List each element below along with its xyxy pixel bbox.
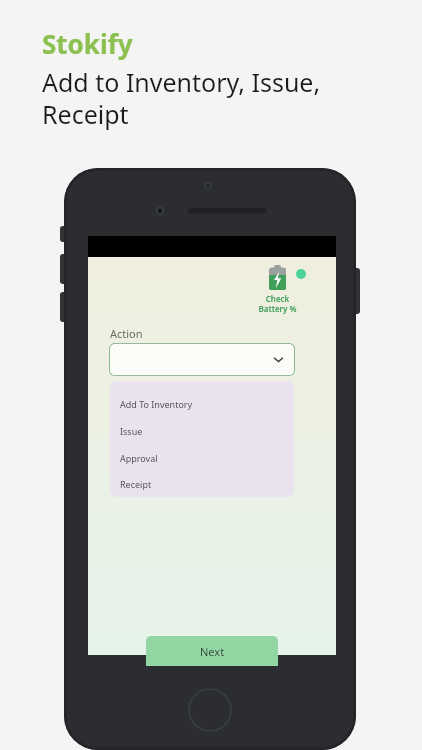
button[interactable]: Add To Inventory (120, 390, 294, 417)
other: Open action list (274, 355, 283, 364)
button[interactable]: Check battery percent (246, 263, 308, 316)
button[interactable]: Issue (120, 417, 294, 444)
button[interactable]: Open action list (109, 343, 295, 376)
staticText: Action (110, 326, 143, 341)
staticText: Issue (120, 425, 143, 437)
staticText: Next (200, 644, 225, 659)
staticText: Check Battery % (258, 293, 297, 314)
other: Home (188, 688, 232, 732)
other: Check battery percent (269, 265, 286, 290)
staticText: Approval (120, 452, 158, 464)
button[interactable]: Next (146, 636, 278, 666)
staticText: Add to Inventory, Issue, Receipt (42, 65, 321, 131)
staticText: Receipt (120, 478, 152, 490)
staticText: Stokify (42, 26, 133, 61)
button[interactable]: Approval (120, 444, 294, 471)
button[interactable]: Receipt (120, 471, 294, 497)
staticText: Add To Inventory (120, 398, 193, 410)
